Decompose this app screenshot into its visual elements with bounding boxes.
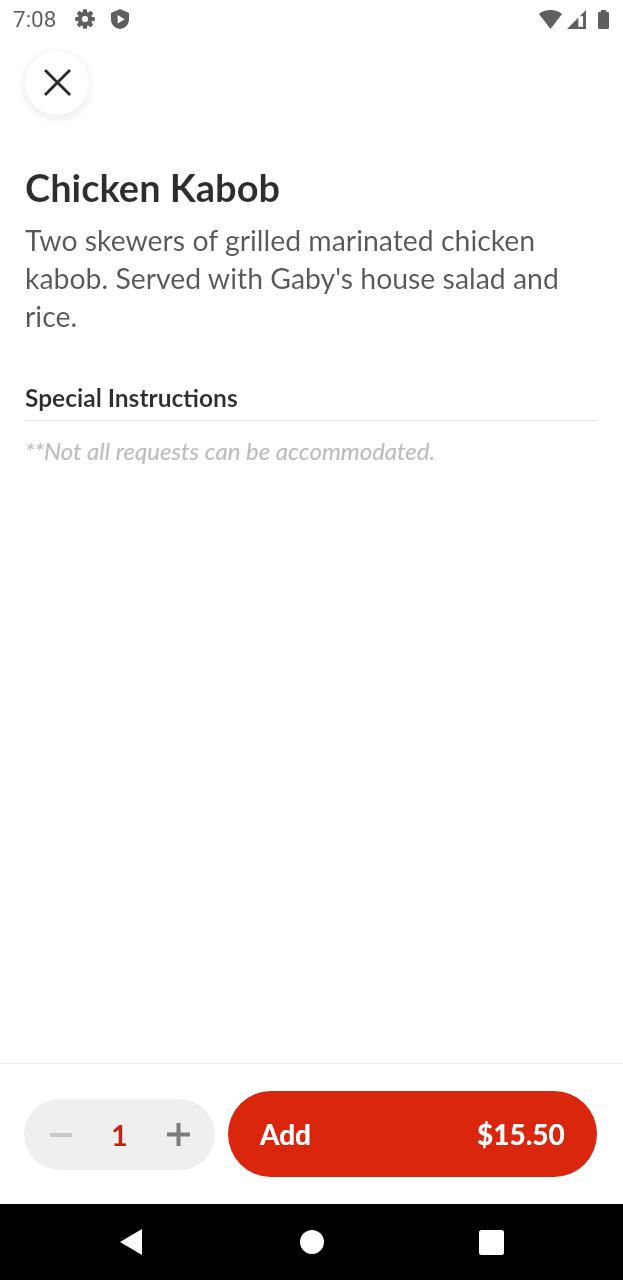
staticText: 7:08 bbox=[13, 6, 57, 32]
button[interactable]: Increase quantity bbox=[141, 1099, 215, 1170]
button[interactable]: Home bbox=[191, 1204, 433, 1280]
staticText: Two skewers of grilled marinated chicken… bbox=[25, 223, 598, 333]
staticText: $15.50 bbox=[477, 1117, 565, 1151]
button[interactable]: Add bbox=[228, 1091, 597, 1177]
button[interactable]: Close bbox=[25, 51, 89, 115]
staticText: 1 bbox=[111, 1117, 128, 1152]
button[interactable]: Back bbox=[70, 1204, 191, 1280]
staticText: **Not all requests can be accommodated. bbox=[25, 436, 436, 465]
button[interactable]: Recent apps bbox=[433, 1204, 549, 1280]
staticText: Chicken Kabob bbox=[25, 164, 281, 210]
button[interactable]: Decrease quantity bbox=[24, 1099, 98, 1170]
staticText: Special Instructions bbox=[25, 383, 238, 412]
staticText: Add bbox=[260, 1117, 311, 1151]
